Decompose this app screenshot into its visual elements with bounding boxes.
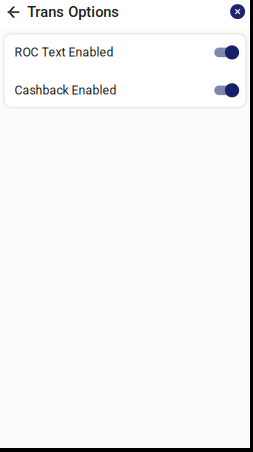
- button[interactable]: Cashback Enabled: [5, 83, 245, 97]
- button[interactable]: Back: [0, 0, 27, 24]
- button[interactable]: ROC Text Enabled: [5, 45, 245, 59]
- button[interactable]: Close: [230, 0, 250, 24]
- staticText: Trans Options: [27, 3, 119, 21]
- staticText: Cashback Enabled: [14, 83, 116, 97]
- staticText: ROC Text Enabled: [14, 45, 113, 60]
